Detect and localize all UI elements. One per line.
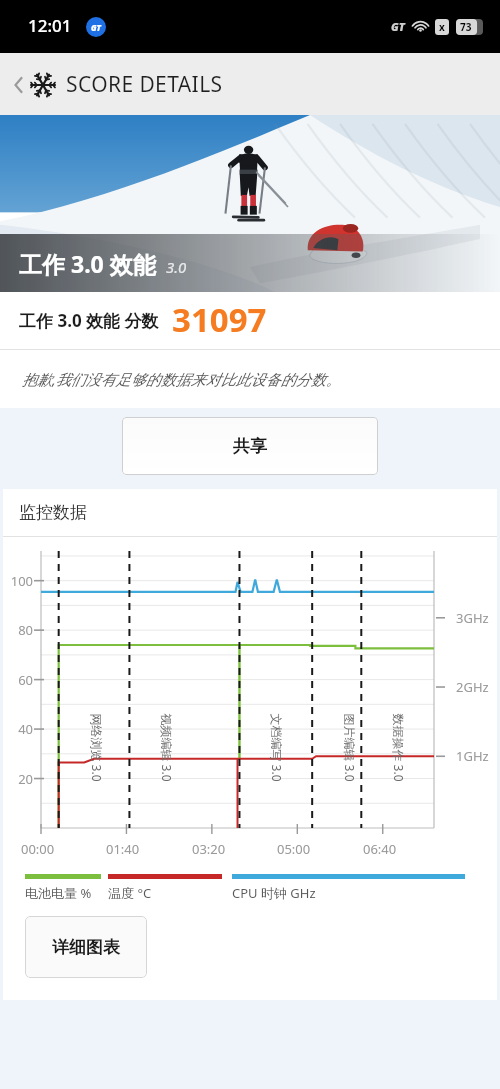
staticText: 60 <box>5 671 33 689</box>
staticText: 2GHz <box>456 678 489 696</box>
button[interactable]: 详细图表 <box>25 916 147 978</box>
staticText: 抱歉,我们没有足够的数据来对比此设备的分数。 <box>22 369 341 389</box>
staticText: 工作 3.0 效能 分数 <box>19 309 159 332</box>
staticText: 详细图表 <box>52 937 120 958</box>
staticText: 网络浏览 3.0 <box>88 713 104 782</box>
staticText: 图片编辑 3.0 <box>341 713 357 782</box>
staticText: 温度 °C <box>108 884 152 902</box>
staticText: 03:20 <box>192 840 226 858</box>
staticText: 05:00 <box>277 840 311 858</box>
staticText: 1GHz <box>456 747 489 765</box>
staticText: 01:40 <box>106 840 140 858</box>
staticText: 3.0 <box>166 257 187 277</box>
staticText: 工作 3.0 效能 <box>19 248 156 279</box>
staticText: 共享 <box>233 436 267 457</box>
staticText: 12:01 <box>28 14 72 37</box>
staticText: 3GHz <box>456 609 489 627</box>
staticText: 监控数据 <box>19 502 87 523</box>
staticText: 00:00 <box>21 840 55 858</box>
staticText: SCORE DETAILS <box>66 70 223 99</box>
staticText: CPU 时钟 GHz <box>232 884 316 902</box>
staticText: 20 <box>5 770 33 788</box>
staticText: 视频编辑 3.0 <box>158 713 174 782</box>
staticText: 06:40 <box>363 840 397 858</box>
staticText: 文档编写 3.0 <box>268 713 284 782</box>
staticText: GT <box>91 22 101 33</box>
staticText: x <box>439 20 445 34</box>
staticText: 40 <box>5 720 33 738</box>
staticText: 电池电量 % <box>25 884 92 902</box>
staticText: GT <box>391 19 405 34</box>
staticText: 73 <box>460 20 472 34</box>
staticText: 31097 <box>172 297 267 342</box>
staticText: 100 <box>5 572 33 590</box>
button[interactable]: Back <box>8 64 227 105</box>
staticText: 80 <box>5 621 33 639</box>
button[interactable]: 共享 <box>122 417 378 475</box>
staticText: 数据操作 3.0 <box>390 713 406 782</box>
